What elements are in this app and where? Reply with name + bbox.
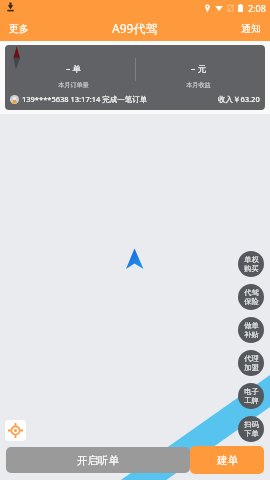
staticText: 做单 [244, 321, 259, 330]
staticText: 加盟 [244, 363, 259, 372]
button[interactable]: 代理 [238, 350, 264, 376]
staticText: 工牌 [244, 396, 259, 405]
staticText: 单权 [244, 255, 259, 264]
staticText: 保险 [244, 297, 259, 306]
staticText: 代理 [244, 354, 259, 363]
staticText: A99代驾 [112, 20, 158, 36]
staticText: 本月收益 [186, 81, 211, 89]
staticText: 开启听单 [77, 454, 119, 467]
staticText: 2:08 [248, 2, 266, 14]
button[interactable]: 开启听单 [6, 447, 190, 473]
button[interactable]: 定位 [5, 420, 26, 441]
button[interactable]: 通知 [232, 17, 270, 40]
staticText: 建单 [217, 454, 238, 467]
button[interactable]: 单权 [238, 251, 264, 277]
staticText: 本月订单量 [58, 81, 89, 89]
button[interactable]: 做单 [238, 317, 264, 343]
staticText: 更多 [9, 22, 29, 35]
staticText: 收入￥63.20 [218, 94, 260, 104]
staticText: – 元 [191, 63, 206, 75]
button[interactable]: 代驾 [238, 284, 264, 310]
button[interactable]: 更多 [0, 17, 38, 40]
staticText: 通知 [241, 22, 261, 35]
staticText: 下单 [244, 429, 259, 438]
staticText: 139****5638 13:17:14 完成一笔订单 [22, 94, 148, 104]
staticText: 购买 [244, 264, 259, 273]
staticText: 补贴 [244, 330, 259, 339]
button[interactable]: 扫码 [238, 416, 264, 442]
button[interactable]: 电子 [238, 383, 264, 409]
button[interactable]: 建单 [190, 446, 264, 474]
staticText: 电子 [244, 387, 259, 396]
staticText: 代驾 [244, 288, 259, 297]
staticText: 扫码 [244, 420, 259, 429]
staticText: – 单 [66, 63, 81, 75]
